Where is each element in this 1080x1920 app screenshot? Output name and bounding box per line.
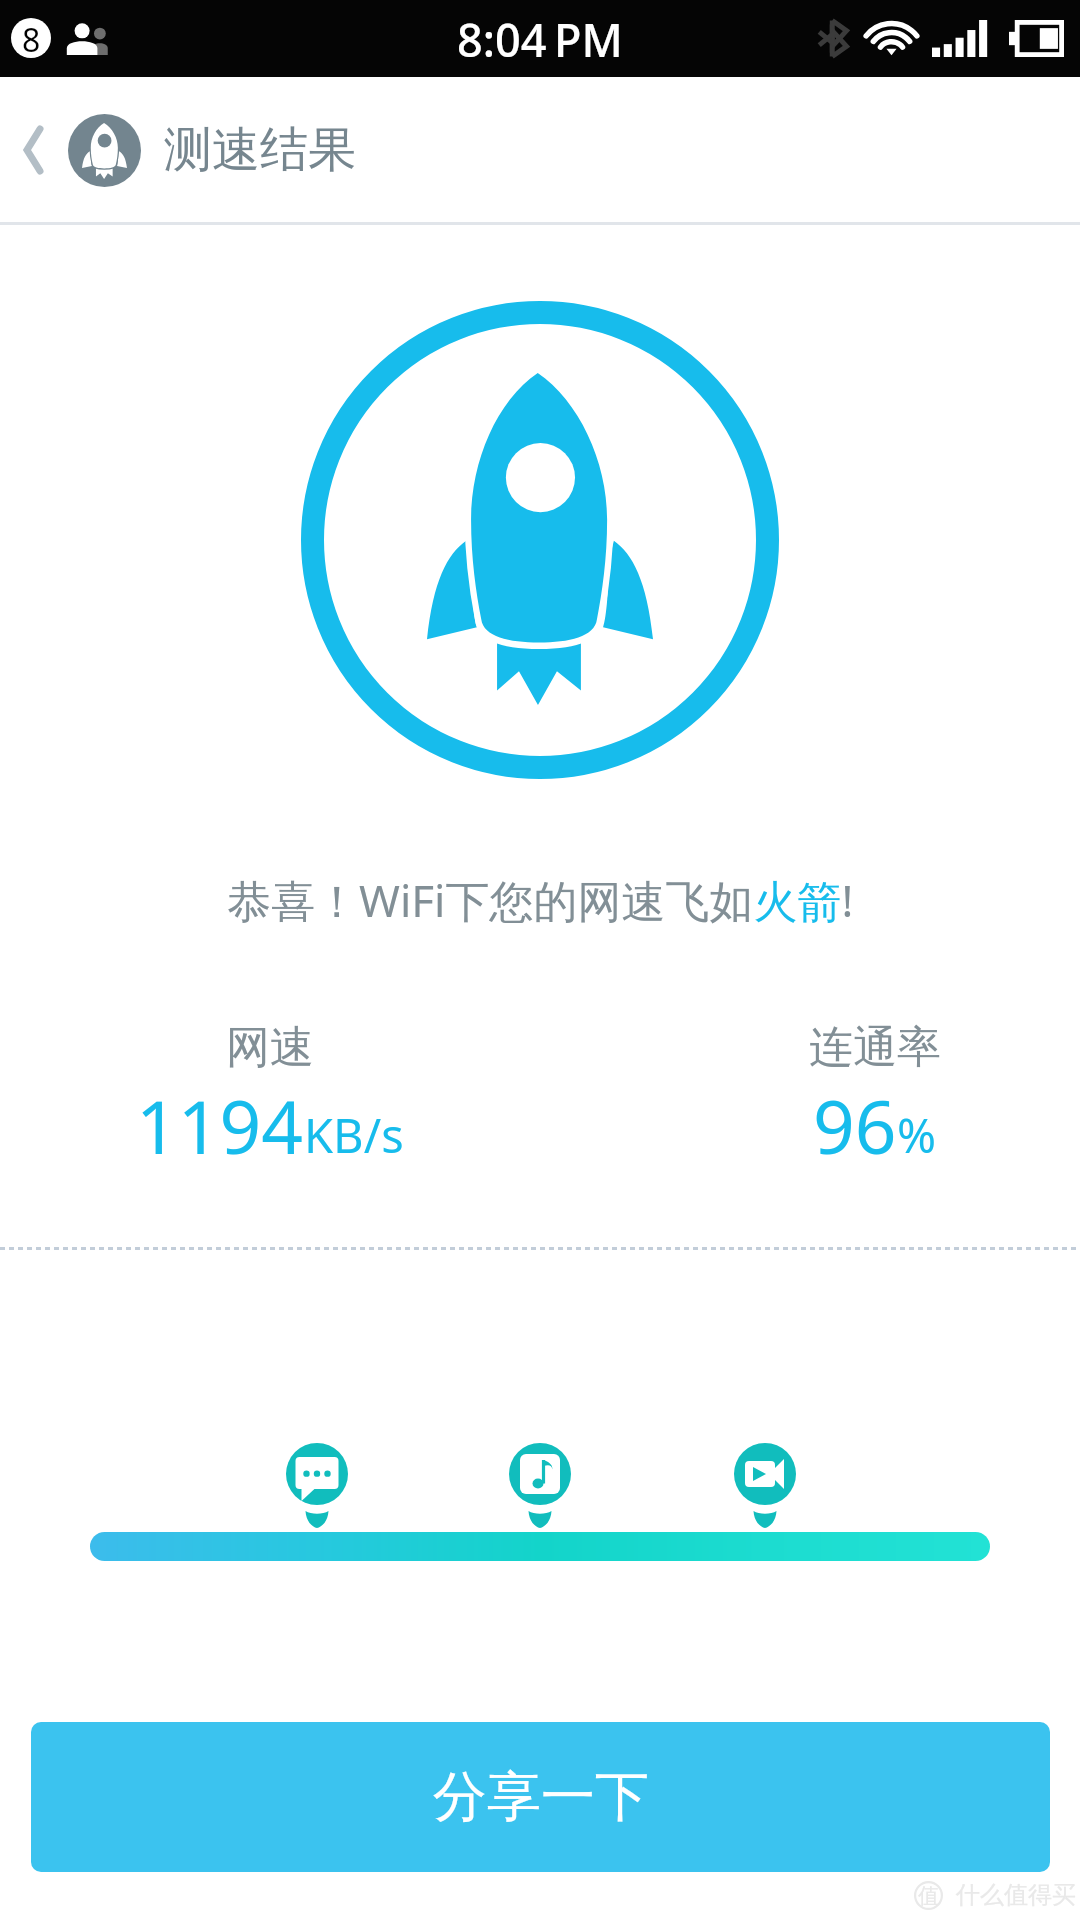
staticText: KB/s — [304, 1103, 404, 1167]
staticText: 96 — [813, 1076, 897, 1175]
staticText: 值 — [918, 1883, 939, 1909]
button[interactable]: 分享一下 — [31, 1722, 1050, 1872]
button[interactable]: Video — [725, 1443, 805, 1531]
staticText: 测速结果 — [164, 120, 356, 180]
staticText: 分享一下 — [433, 1763, 649, 1831]
staticText: 8 — [22, 18, 41, 58]
staticText: 连通率 — [809, 1020, 941, 1075]
button[interactable]: Music — [500, 1443, 580, 1531]
staticText: 什么值得买 — [956, 1880, 1076, 1910]
staticText: 网速 — [226, 1020, 314, 1075]
button[interactable]: Chat — [277, 1443, 357, 1531]
staticText: % — [897, 1103, 937, 1167]
button[interactable]: Back — [0, 110, 66, 190]
staticText: 恭喜！WiFi下您的网速飞如火箭! — [227, 870, 854, 930]
staticText: 1194 — [136, 1076, 304, 1175]
staticText: 8:04 PM — [457, 9, 623, 70]
